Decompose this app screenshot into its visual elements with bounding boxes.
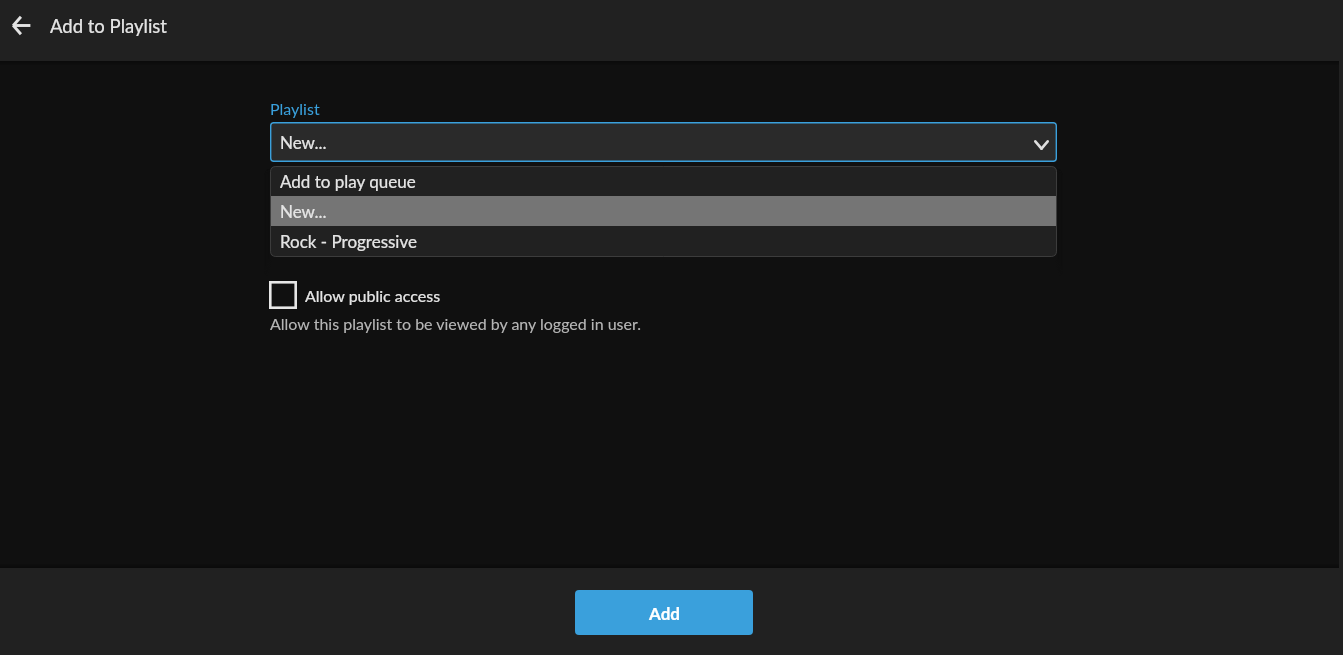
other: Expand playlist list: [1034, 140, 1049, 150]
staticText: Add: [649, 603, 680, 623]
button[interactable]: Rock - Progressive: [270, 226, 1057, 256]
button[interactable]: New...: [270, 196, 1057, 226]
staticText: Allow this playlist to be viewed by any …: [270, 314, 641, 333]
staticText: Add to Playlist: [50, 15, 167, 37]
staticText: Playlist: [270, 99, 320, 118]
staticText: Add to play queue: [280, 171, 416, 191]
button[interactable]: New...: [270, 122, 1057, 162]
staticText: New...: [280, 201, 327, 221]
staticText: Rock - Progressive: [280, 231, 417, 251]
staticText: Allow public access: [305, 286, 441, 305]
staticText: New...: [280, 132, 327, 152]
button[interactable]: Allow public access: [269, 281, 441, 309]
button[interactable]: Add: [575, 590, 753, 635]
button[interactable]: Navigate up: [0, 0, 42, 50]
button[interactable]: Add to play queue: [270, 166, 1057, 196]
